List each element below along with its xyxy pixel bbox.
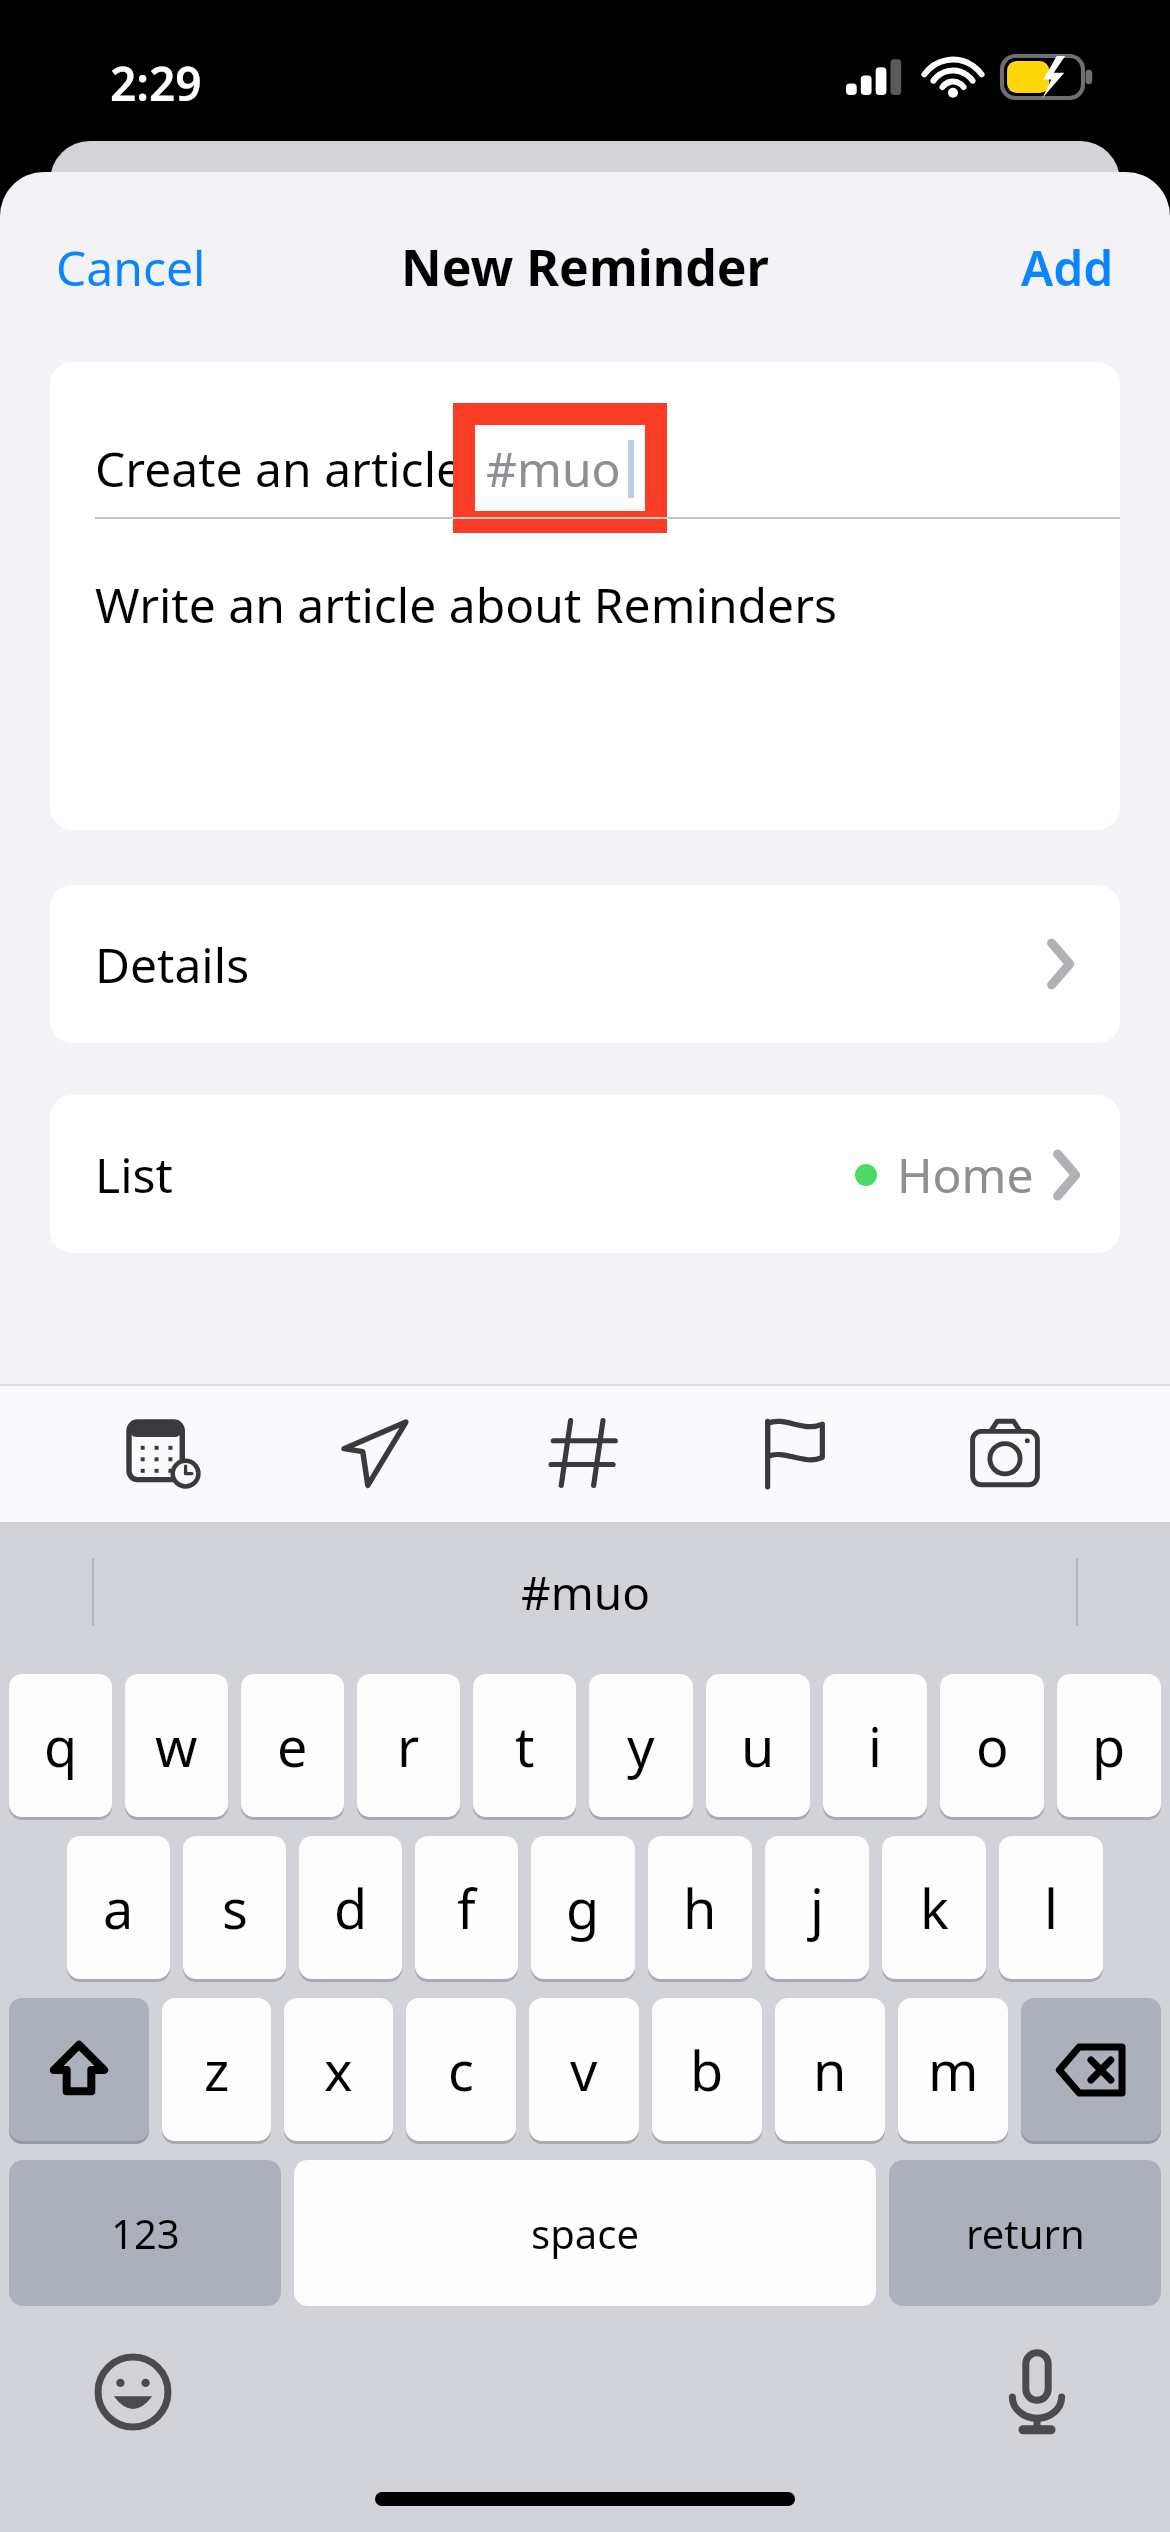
button[interactable]: z	[162, 1998, 271, 2141]
button[interactable]: p	[1057, 1674, 1161, 1817]
staticText: b	[690, 2033, 724, 2107]
button[interactable]: s	[183, 1836, 286, 1979]
button[interactable]: Cancel	[40, 223, 222, 312]
staticText: t	[515, 1709, 535, 1783]
staticText: Write an article about Reminders	[95, 572, 837, 637]
button[interactable]: w	[125, 1674, 228, 1817]
staticText: i	[868, 1709, 882, 1783]
staticText: List	[95, 1142, 173, 1207]
button[interactable]: m	[898, 1998, 1008, 2141]
button[interactable]: v	[529, 1998, 639, 2141]
staticText: 2:29	[110, 52, 202, 115]
staticText: Add	[1021, 235, 1114, 300]
button[interactable]: Add flag	[740, 1398, 850, 1508]
button[interactable]: 123	[9, 2160, 281, 2306]
button[interactable]: o	[940, 1674, 1044, 1817]
staticText: v	[570, 2033, 598, 2107]
staticText: z	[204, 2033, 230, 2107]
button[interactable]: List	[50, 1095, 1120, 1253]
button[interactable]: l	[999, 1836, 1103, 1979]
staticText: l	[1044, 1871, 1058, 1945]
staticText: Home	[897, 1142, 1034, 1207]
button[interactable]: k	[882, 1836, 986, 1979]
staticText: #muo	[521, 1561, 650, 1624]
staticText: y	[627, 1709, 655, 1783]
button[interactable]: g	[531, 1836, 635, 1979]
staticText: x	[324, 2033, 353, 2107]
button[interactable]: Add photo	[950, 1398, 1060, 1508]
staticText: New Reminder	[401, 233, 769, 301]
staticText: Details	[95, 932, 250, 997]
staticText: h	[683, 1871, 717, 1945]
button[interactable]: u	[706, 1674, 810, 1817]
staticText: p	[1092, 1709, 1126, 1783]
staticText: k	[920, 1871, 949, 1945]
staticText: #muo	[486, 436, 621, 501]
button[interactable]: f	[415, 1836, 518, 1979]
button[interactable]: Details	[50, 885, 1120, 1043]
staticText: o	[976, 1709, 1009, 1783]
button[interactable]: j	[765, 1836, 869, 1979]
button[interactable]: r	[357, 1674, 460, 1817]
staticText: g	[566, 1871, 600, 1945]
staticText: a	[103, 1871, 134, 1945]
button[interactable]: x	[284, 1998, 393, 2141]
staticText: m	[928, 2033, 979, 2107]
button[interactable]: c	[406, 1998, 516, 2141]
staticText: s	[222, 1871, 248, 1945]
staticText: d	[334, 1871, 368, 1945]
staticText: e	[277, 1709, 308, 1783]
button[interactable]: i	[823, 1674, 927, 1817]
staticText: Cancel	[56, 235, 206, 300]
staticText: 123	[111, 2206, 180, 2260]
staticText: f	[457, 1871, 476, 1945]
button[interactable]: h	[648, 1836, 752, 1979]
staticText: n	[813, 2033, 847, 2107]
button[interactable]: a	[67, 1836, 170, 1979]
button[interactable]: Add tag	[530, 1398, 640, 1508]
button[interactable]: Emoji keyboard	[88, 2347, 178, 2437]
staticText: j	[810, 1871, 824, 1945]
button[interactable]: return	[889, 2160, 1161, 2306]
button[interactable]: Shift	[9, 1998, 149, 2141]
button[interactable]: Dictation	[992, 2347, 1082, 2437]
button[interactable]: b	[652, 1998, 762, 2141]
button[interactable]: Add location	[320, 1398, 430, 1508]
staticText: return	[966, 2206, 1085, 2260]
button[interactable]: d	[299, 1836, 402, 1979]
staticText: space	[531, 2206, 639, 2260]
staticText: u	[741, 1709, 775, 1783]
staticText: c	[448, 2033, 474, 2107]
button[interactable]: Backspace	[1021, 1998, 1161, 2141]
staticText: r	[397, 1709, 420, 1783]
button[interactable]: t	[473, 1674, 576, 1817]
button[interactable]: n	[775, 1998, 885, 2141]
staticText: q	[44, 1709, 78, 1783]
button[interactable]: Create an article	[50, 362, 1120, 830]
staticText: Create an article	[95, 436, 464, 501]
button[interactable]: Add date and time	[110, 1398, 220, 1508]
button[interactable]: Add	[1005, 223, 1130, 312]
staticText: w	[155, 1709, 198, 1783]
button[interactable]: y	[589, 1674, 693, 1817]
button[interactable]: e	[241, 1674, 344, 1817]
button[interactable]: q	[9, 1674, 112, 1817]
button[interactable]: space	[294, 2160, 876, 2306]
